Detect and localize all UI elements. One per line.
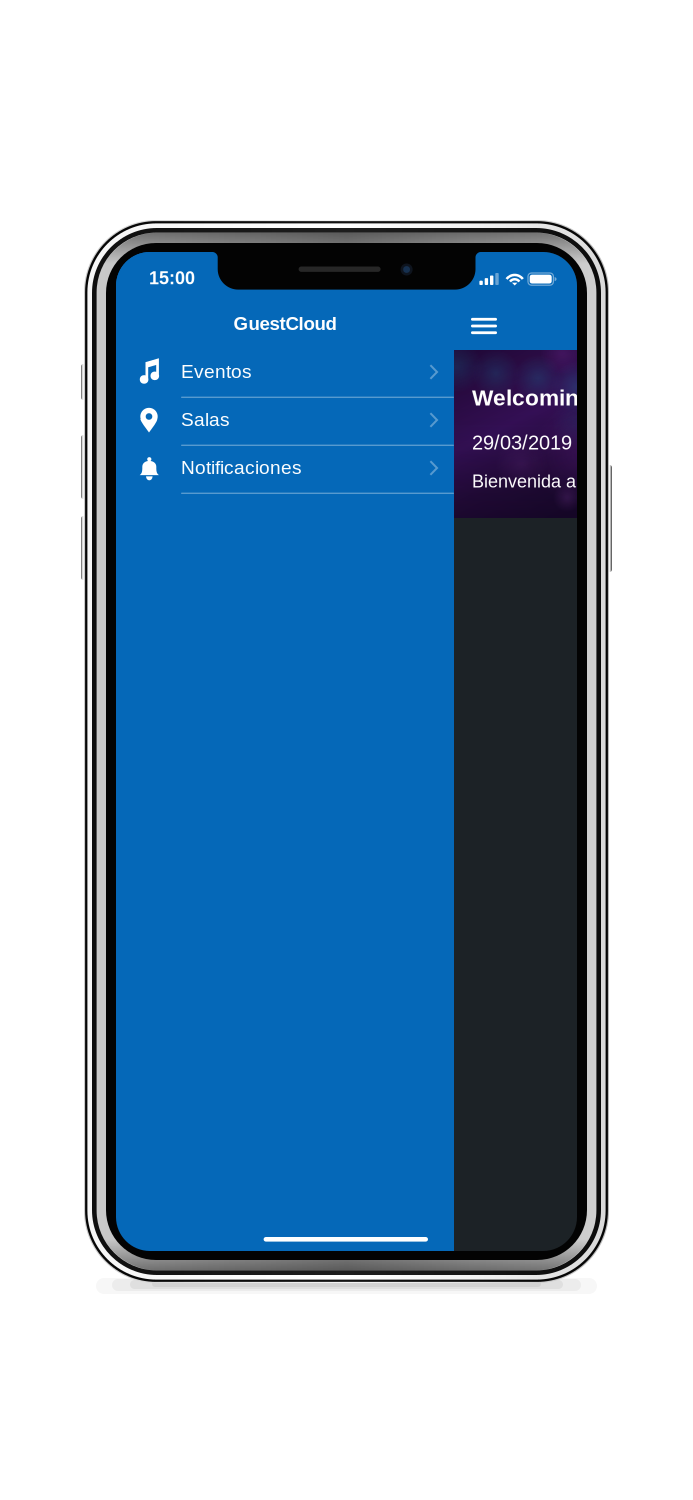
staticText: 29/03/2019 21:00 xyxy=(472,431,628,454)
button[interactable]: Notificaciones xyxy=(116,446,454,494)
staticText: Notificaciones xyxy=(181,457,302,478)
button[interactable]: Open menu xyxy=(449,304,519,348)
staticText: Salas xyxy=(181,409,230,430)
button[interactable]: Salas xyxy=(116,398,454,446)
staticText: GuestCloud xyxy=(233,313,336,334)
staticText: Bienvenida a todos los xyxy=(472,471,653,491)
staticText: 15:00 xyxy=(149,268,195,288)
staticText: Eventos xyxy=(181,361,252,382)
button[interactable]: Eventos xyxy=(116,350,454,398)
staticText: Welcoming Party xyxy=(472,385,657,410)
